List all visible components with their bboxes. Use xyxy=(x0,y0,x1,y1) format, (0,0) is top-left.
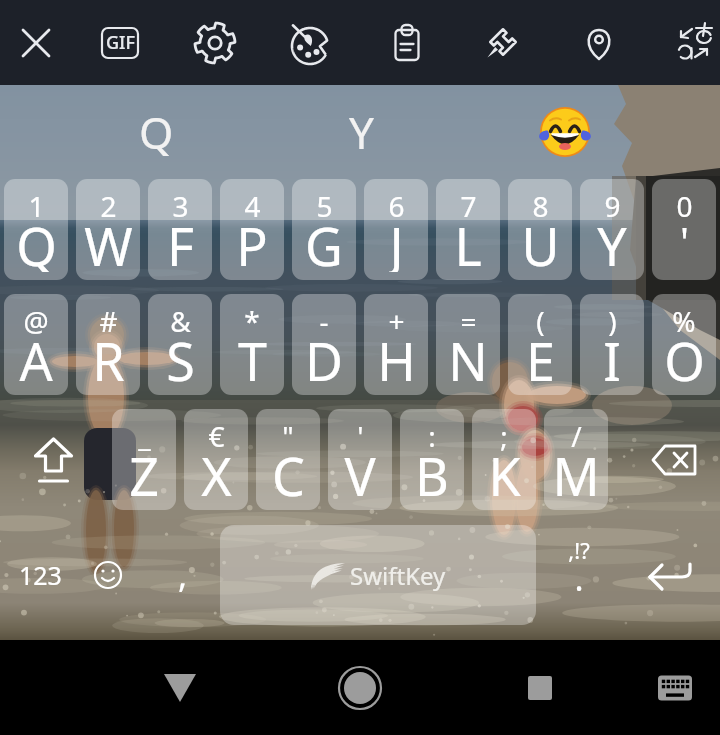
staticText: * xyxy=(244,302,260,340)
button[interactable]: 1 xyxy=(4,179,68,280)
staticText: W xyxy=(84,210,133,272)
button[interactable]: Enter xyxy=(616,525,720,625)
button[interactable]: Backspace xyxy=(620,409,720,510)
staticText: , xyxy=(178,552,188,598)
button[interactable]: 0 xyxy=(652,179,716,280)
staticText: K xyxy=(488,440,521,502)
staticText: C xyxy=(272,440,305,502)
button[interactable]: 8 xyxy=(508,179,572,280)
staticText: 1 xyxy=(28,187,45,225)
staticText: / xyxy=(571,417,582,455)
button[interactable]: / xyxy=(544,409,608,510)
staticText: GIF xyxy=(106,30,135,55)
button[interactable]: * xyxy=(220,294,284,395)
button[interactable]: Stickers xyxy=(460,0,544,85)
staticText: " xyxy=(282,417,294,455)
staticText: F xyxy=(167,210,194,272)
button[interactable]: 5 xyxy=(292,179,356,280)
button[interactable]: ,!? xyxy=(542,525,616,625)
button[interactable]: _ xyxy=(112,409,176,510)
staticText: - xyxy=(319,302,329,340)
staticText: . xyxy=(542,555,616,601)
button[interactable]: & xyxy=(148,294,212,395)
button[interactable]: Recent apps xyxy=(493,641,587,735)
button[interactable]: GIF xyxy=(78,0,162,85)
button[interactable]: Q xyxy=(36,85,276,179)
staticText: 7 xyxy=(460,187,477,225)
staticText: 4 xyxy=(244,187,261,225)
staticText: 0 xyxy=(676,187,693,225)
staticText: € xyxy=(208,417,225,455)
staticText: 9 xyxy=(604,187,621,225)
staticText: : xyxy=(428,417,436,455)
staticText: Q xyxy=(139,102,174,162)
button[interactable]: 3 xyxy=(148,179,212,280)
staticText: N xyxy=(448,325,488,387)
staticText: ; xyxy=(500,417,508,455)
button[interactable]: ; xyxy=(472,409,536,510)
staticText: ' xyxy=(680,214,689,268)
button[interactable]: Translate xyxy=(652,0,720,85)
button[interactable]: ' xyxy=(328,409,392,510)
button[interactable]: 123 xyxy=(4,525,76,625)
button[interactable]: ( xyxy=(508,294,572,395)
staticText: _ xyxy=(138,417,151,455)
button[interactable]: 4 xyxy=(220,179,284,280)
button[interactable]: Clipboard xyxy=(365,0,449,85)
button[interactable]: Close xyxy=(0,0,78,85)
staticText: 123 xyxy=(19,558,62,592)
staticText: 5 xyxy=(316,187,333,225)
button[interactable]: ) xyxy=(580,294,644,395)
staticText: J xyxy=(389,210,404,272)
button[interactable]: % xyxy=(652,294,716,395)
staticText: Q xyxy=(16,210,57,272)
button[interactable]: @ xyxy=(4,294,68,395)
staticText: L xyxy=(454,210,482,272)
button[interactable]: Location xyxy=(557,0,641,85)
button[interactable]: # xyxy=(76,294,140,395)
button[interactable]: 6 xyxy=(364,179,428,280)
staticText: G xyxy=(305,210,343,272)
staticText: 3 xyxy=(172,187,189,225)
staticText: T xyxy=(238,325,267,387)
button[interactable]: , xyxy=(148,525,218,625)
button[interactable]: " xyxy=(256,409,320,510)
staticText: ) xyxy=(608,302,617,340)
button[interactable]: € xyxy=(184,409,248,510)
staticText: B xyxy=(415,440,449,502)
staticText: ( xyxy=(536,302,545,340)
staticText: 8 xyxy=(532,187,549,225)
button[interactable]: Settings xyxy=(173,0,257,85)
staticText: X xyxy=(201,440,232,502)
button[interactable]: 9 xyxy=(580,179,644,280)
button[interactable]: Y xyxy=(241,85,481,179)
button[interactable]: 2 xyxy=(76,179,140,280)
button[interactable]: Shift xyxy=(0,409,108,510)
button[interactable]: Switch keyboard xyxy=(628,641,720,735)
staticText: A xyxy=(19,325,53,387)
staticText: R xyxy=(92,325,125,387)
staticText: V xyxy=(344,440,376,502)
staticText: # xyxy=(99,302,118,340)
button[interactable]: : xyxy=(400,409,464,510)
staticText: D xyxy=(305,325,343,387)
staticText: = xyxy=(460,302,477,340)
staticText: % xyxy=(672,302,696,340)
staticText: ,!? xyxy=(542,535,616,565)
button[interactable]: Emoji xyxy=(78,525,138,625)
button[interactable]: Back xyxy=(133,641,227,735)
button[interactable]: - xyxy=(292,294,356,395)
button[interactable]: SwiftKey xyxy=(220,525,536,625)
staticText: SwiftKey xyxy=(350,559,446,592)
staticText: P xyxy=(236,210,268,272)
staticText: M xyxy=(552,440,600,502)
button[interactable]: + xyxy=(364,294,428,395)
staticText: S xyxy=(166,325,195,387)
button[interactable]: 7 xyxy=(436,179,500,280)
staticText: H xyxy=(377,325,416,387)
staticText: O xyxy=(664,325,705,387)
button[interactable]: Home xyxy=(313,641,407,735)
button[interactable]: Themes xyxy=(269,0,353,85)
button[interactable]: Laughing emoji xyxy=(445,85,685,179)
button[interactable]: = xyxy=(436,294,500,395)
